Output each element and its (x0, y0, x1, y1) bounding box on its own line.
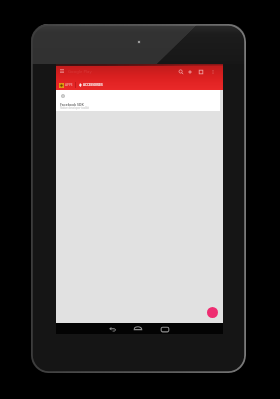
staticText: Google Play (68, 69, 92, 75)
staticText: Native developer toolkit (60, 106, 90, 110)
button[interactable]: Recent apps (161, 327, 169, 332)
button[interactable]: Add (187, 69, 193, 75)
staticText: Facebook SDK (60, 102, 84, 107)
button[interactable]: My apps (198, 69, 204, 75)
staticText: ACCESSORIES (83, 83, 103, 87)
button[interactable]: Search (178, 69, 184, 75)
button[interactable]: APPS (58, 81, 73, 89)
button[interactable]: Compose (207, 307, 218, 318)
button[interactable]: Back (109, 326, 116, 331)
button[interactable]: More options (210, 69, 216, 75)
staticText: APPS (65, 83, 73, 87)
button[interactable]: ACCESSORIES (78, 81, 103, 89)
button[interactable]: Navigation menu (60, 69, 64, 73)
button[interactable]: Home (134, 325, 142, 330)
